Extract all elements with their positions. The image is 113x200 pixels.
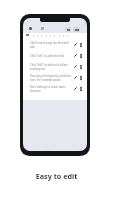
staticText: Click "Edit" to add next text [30,54,72,58]
button[interactable]: Text style [65,27,71,32]
staticText: Easy to edit [0,171,113,181]
button[interactable]: Here settings to check some features [23,83,87,94]
staticText: Click "Edit" to add or to delete existin… [30,63,72,70]
staticText: Here settings to check some features [30,85,72,92]
button[interactable]: Click here to copy the font and edit [23,39,87,50]
staticText: Click here to copy the font and edit [30,41,72,48]
button[interactable]: You can put frequently used text here. F… [23,72,87,83]
button[interactable]: Click "Edit" to add or to delete existin… [23,61,87,72]
button[interactable]: Account [29,27,32,30]
button[interactable]: Click "Edit" to add next text [23,50,87,61]
button[interactable]: Search [41,27,44,30]
staticText: You can put frequently used text here. F… [30,74,72,81]
button[interactable]: More options [73,27,80,32]
